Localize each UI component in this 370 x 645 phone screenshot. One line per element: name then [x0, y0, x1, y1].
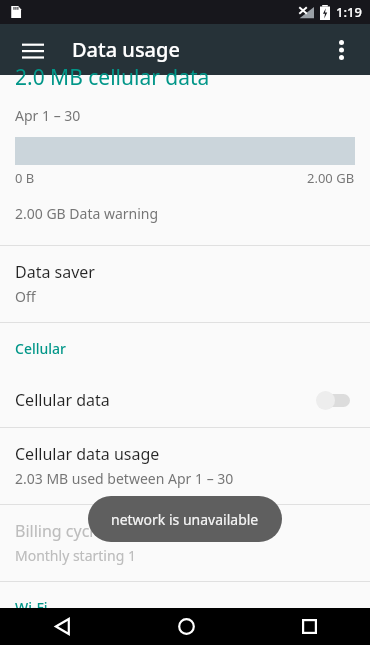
button[interactable]: Cellular data toggle — [316, 389, 352, 411]
staticText: network is unavailable — [111, 510, 259, 529]
staticText: 2.00 GB — [307, 169, 355, 187]
staticText: 2.03 MB used between Apr 1 – 30 — [15, 469, 234, 488]
button[interactable]: Data saver — [0, 246, 370, 322]
button[interactable]: Recent apps — [289, 608, 329, 645]
staticText: Cellular — [15, 339, 66, 358]
staticText: Data usage — [72, 36, 180, 63]
staticText: Monthly starting 1 — [15, 546, 136, 565]
staticText: 1:19 — [336, 3, 362, 21]
staticText: Data saver — [15, 261, 95, 283]
button[interactable]: Cellular data usage — [0, 428, 370, 504]
staticText: Off — [15, 287, 36, 306]
button[interactable]: Cellular data — [0, 381, 370, 419]
staticText: Apr 1 – 30 — [15, 106, 81, 125]
button[interactable]: Open navigation drawer — [10, 27, 56, 73]
staticText: Wi-Fi — [15, 598, 48, 617]
button[interactable]: Back — [42, 608, 82, 645]
staticText: Cellular data — [15, 389, 110, 411]
button[interactable]: Home — [166, 608, 206, 645]
staticText: 2.00 GB Data warning — [15, 204, 159, 223]
staticText: Billing cycle — [15, 520, 103, 542]
staticText: 0 B — [15, 169, 35, 187]
staticText: 2.0 MB cellular data — [15, 63, 210, 87]
staticText: Cellular data usage — [15, 443, 160, 465]
button[interactable]: More options — [318, 27, 364, 73]
